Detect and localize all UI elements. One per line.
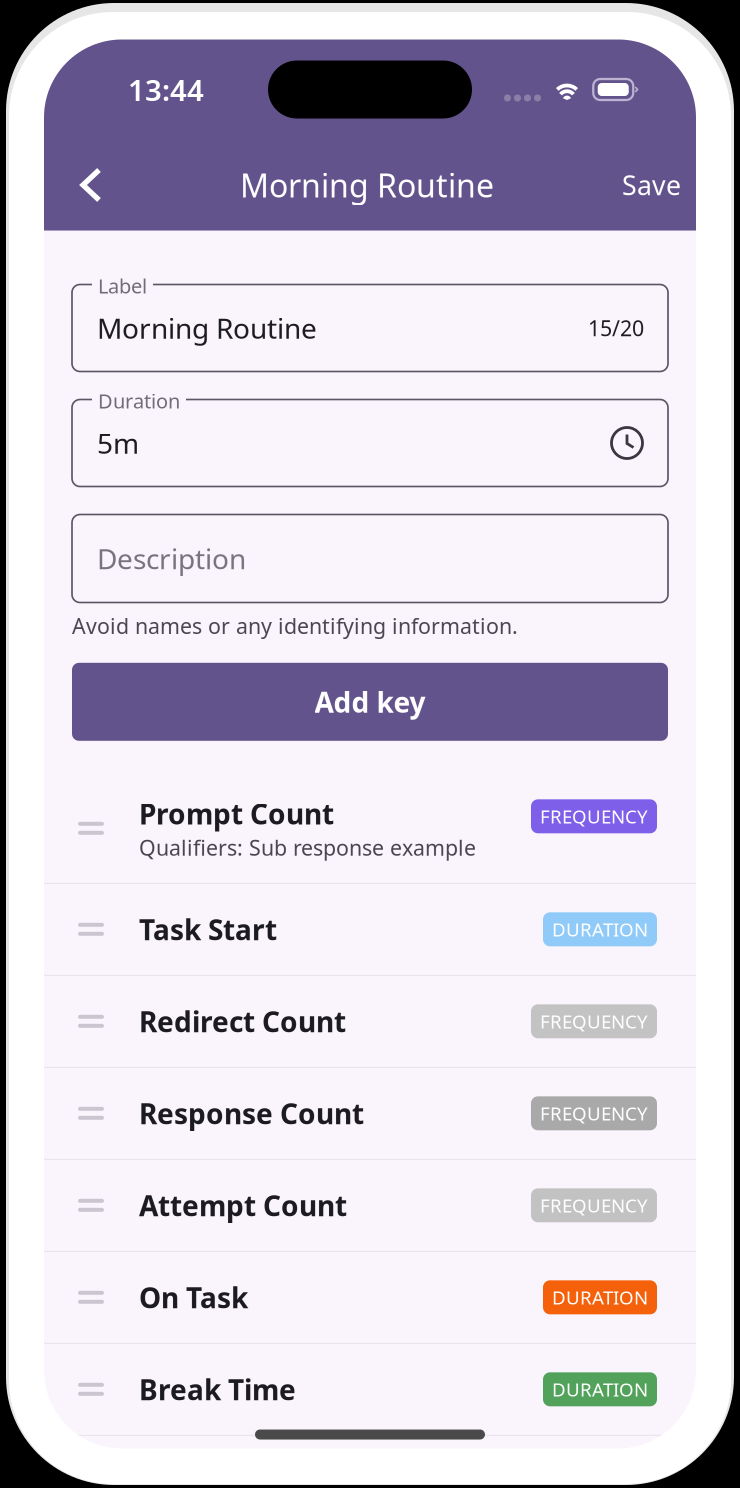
staticText: Break Time bbox=[139, 1371, 296, 1408]
staticText: Morning Routine bbox=[97, 309, 317, 347]
staticText: Qualifiers: Sub response example bbox=[139, 833, 476, 862]
button[interactable]: On Task bbox=[44, 1252, 696, 1344]
staticText: 5m bbox=[97, 424, 139, 462]
staticText: Redirect Count bbox=[139, 1003, 346, 1040]
staticText: Add key bbox=[314, 683, 425, 720]
button[interactable]: Redirect Count bbox=[44, 976, 696, 1068]
staticText: DURATION bbox=[552, 1285, 648, 1310]
staticText: DURATION bbox=[552, 917, 648, 942]
staticText: Response Count bbox=[139, 1095, 364, 1132]
staticText: Attempt Count bbox=[139, 1187, 347, 1224]
button[interactable]: Prompt Count bbox=[44, 774, 696, 884]
staticText: DURATION bbox=[552, 1377, 648, 1402]
button[interactable]: Task Start bbox=[44, 884, 696, 976]
staticText: Morning Routine bbox=[240, 164, 494, 206]
staticText: Duration bbox=[98, 387, 180, 414]
staticText: On Task bbox=[139, 1279, 248, 1316]
staticText: 15/20 bbox=[588, 314, 644, 342]
button[interactable]: Save bbox=[595, 154, 681, 216]
button[interactable]: Attempt Count bbox=[44, 1160, 696, 1252]
staticText: Task Start bbox=[139, 911, 277, 948]
button[interactable]: Back bbox=[54, 154, 112, 216]
staticText: Prompt Count bbox=[139, 795, 334, 832]
button[interactable]: Add key bbox=[72, 663, 668, 741]
button[interactable]: Break Time bbox=[44, 1344, 696, 1436]
staticText: FREQUENCY bbox=[540, 1101, 648, 1126]
staticText: FREQUENCY bbox=[540, 804, 648, 829]
staticText: 13:44 bbox=[128, 70, 204, 109]
staticText: Description bbox=[97, 540, 246, 577]
staticText: FREQUENCY bbox=[540, 1009, 648, 1034]
staticText: Avoid names or any identifying informati… bbox=[72, 611, 518, 640]
staticText: Label bbox=[98, 272, 147, 299]
staticText: FREQUENCY bbox=[540, 1193, 648, 1218]
button[interactable]: Response Count bbox=[44, 1068, 696, 1160]
staticText: Save bbox=[622, 167, 681, 203]
